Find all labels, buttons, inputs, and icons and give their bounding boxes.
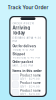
staticText: Out for delivery	[12, 44, 36, 48]
staticText: Today, 9:12 AM	[12, 48, 33, 51]
staticText: Mon, 2:05 PM	[12, 64, 32, 67]
staticText: Product name	[20, 89, 41, 92]
staticText: Qty 1 · $24.00	[20, 77, 40, 80]
staticText: Qty 1 · $24.00	[20, 85, 40, 88]
staticText: ORDER #38210	[12, 22, 34, 25]
staticText: Qty 1 · $24.00	[20, 93, 40, 96]
staticText: Yesterday, 6:40 PM	[12, 56, 39, 59]
staticText: Product name	[20, 74, 41, 77]
staticText: Arriving Today	[12, 25, 30, 36]
staticText: Product name	[20, 81, 41, 85]
staticText: Items in this order	[12, 69, 41, 73]
staticText: Order packed	[12, 60, 33, 64]
staticText: Estimated arrival 4:30 PM	[12, 36, 41, 43]
staticText: Shipped	[12, 52, 25, 56]
staticText: Track Your Order	[7, 5, 48, 10]
